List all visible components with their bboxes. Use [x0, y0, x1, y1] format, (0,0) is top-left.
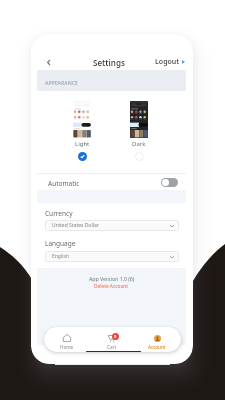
button[interactable]: English [45, 251, 179, 262]
button[interactable]: Account [145, 334, 169, 350]
button[interactable]: Automatic toggle [161, 178, 178, 187]
staticText: Language [45, 239, 76, 248]
staticText: Currency [45, 209, 73, 218]
button[interactable]: Back [41, 55, 55, 69]
button[interactable]: Dark [128, 101, 150, 161]
staticText: Cart [107, 344, 117, 350]
staticText: Settings [93, 57, 125, 68]
button[interactable]: 0 [100, 334, 124, 350]
button[interactable]: Delete Account [94, 283, 129, 290]
staticText: English [52, 253, 70, 260]
staticText: 0 [114, 334, 117, 339]
button[interactable]: Home [55, 334, 79, 350]
staticText: Home [60, 344, 74, 350]
staticText: Automatic [48, 179, 80, 188]
button[interactable]: Logout [154, 56, 186, 68]
staticText: Logout [155, 57, 180, 67]
staticText: Light [75, 140, 90, 148]
staticText: APPEARANCE [45, 79, 78, 86]
staticText: Account [148, 344, 166, 350]
staticText: App Version 1.0 (6) [89, 275, 135, 282]
staticText: United States Dollar [52, 222, 99, 229]
staticText: Dark [132, 140, 146, 148]
button[interactable]: Light [71, 101, 93, 161]
button[interactable]: United States Dollar [45, 220, 179, 231]
